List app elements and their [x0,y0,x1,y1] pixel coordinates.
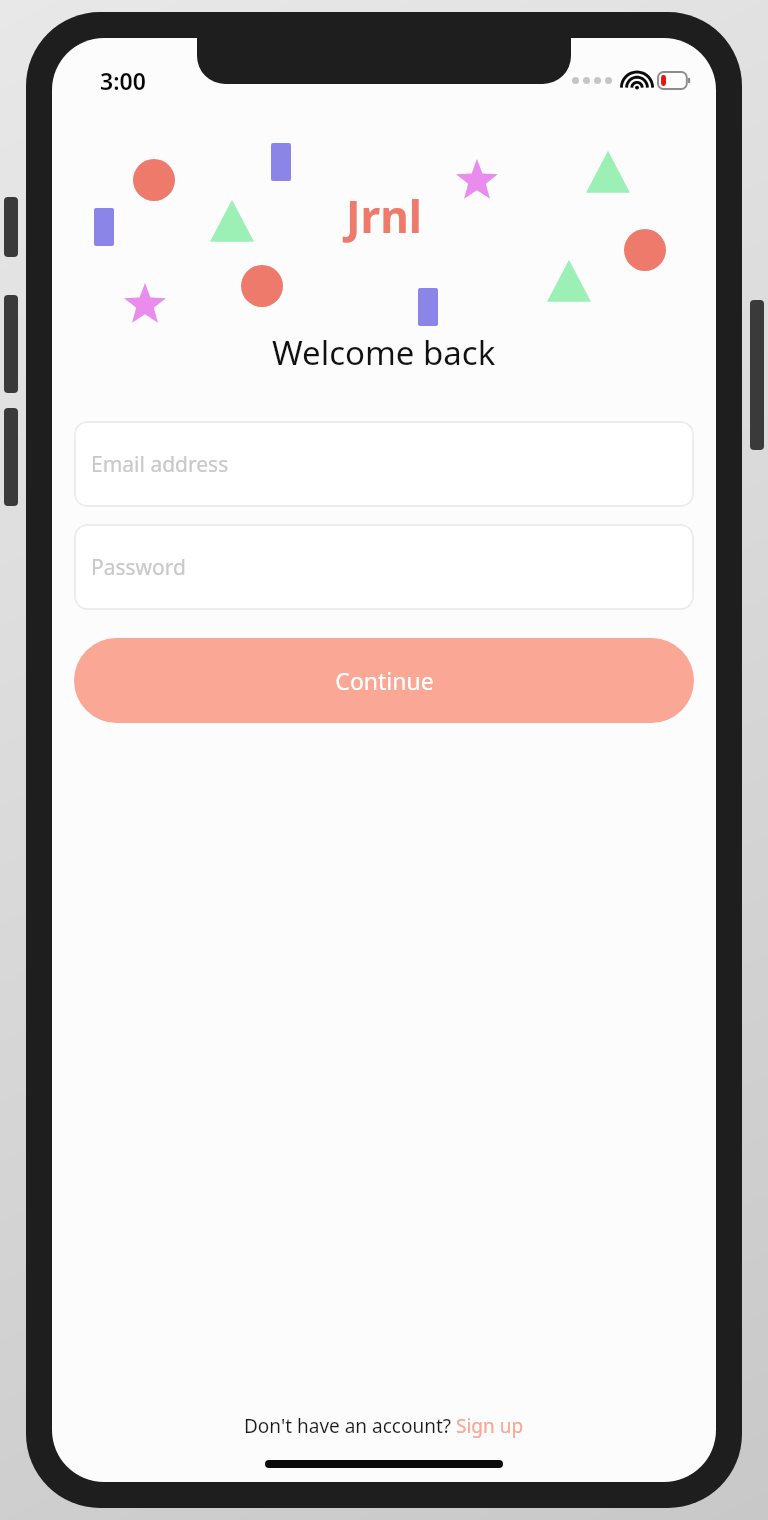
staticText: Continue [335,665,434,696]
staticText: 3:00 [100,65,146,96]
staticText: Email address [91,450,229,479]
staticText: Jrnl [346,186,422,246]
button[interactable]: Sign up [456,1413,524,1439]
other: Silent switch [4,197,18,257]
other: Power [750,300,764,450]
staticText: Don't have an account? [244,1413,456,1439]
staticText: Welcome back [272,330,496,375]
button[interactable]: Password [74,524,694,610]
other: Volume down [4,408,18,506]
staticText: Password [91,553,186,582]
staticText: Sign up [456,1413,524,1439]
button[interactable]: Email address [74,421,694,507]
button[interactable]: Continue [74,638,694,723]
other: Volume up [4,295,18,393]
